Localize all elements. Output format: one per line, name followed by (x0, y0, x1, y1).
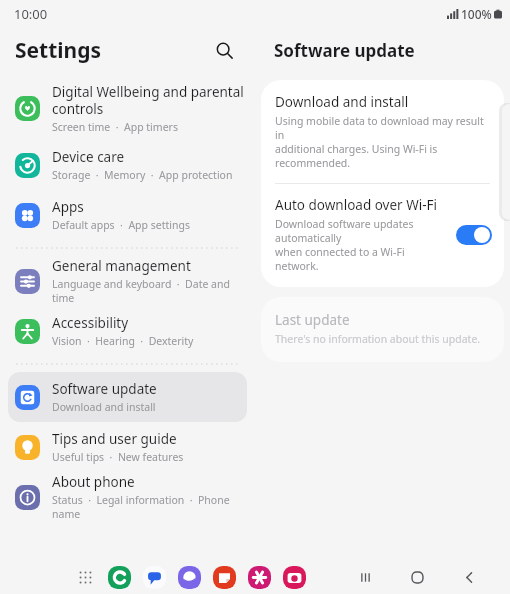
button[interactable]: Accessibility (0, 306, 255, 356)
button[interactable]: Camera (282, 565, 306, 589)
staticText: Using mobile data to download may result… (275, 114, 490, 170)
button[interactable]: Auto download over Wi-Fi (261, 184, 504, 287)
button[interactable]: Apps (74, 566, 96, 588)
staticText: Digital Wellbeing and parental controls (52, 83, 244, 118)
staticText: Vision · Hearing · Dexterity (52, 334, 194, 348)
staticText: Download software updates automatically … (275, 217, 448, 273)
staticText: 100% (461, 6, 492, 22)
staticText: Device care (52, 148, 125, 166)
staticText: Screen time · App timers (52, 120, 178, 134)
button[interactable]: Software update (8, 372, 247, 422)
staticText: Language and keyboard · Date and time (52, 277, 245, 305)
staticText: Auto download over Wi-Fi (275, 196, 438, 214)
staticText: Useful tips · New features (52, 450, 184, 464)
button[interactable]: Digital Wellbeing and parental controls (0, 76, 255, 140)
button[interactable]: Internet (177, 565, 201, 589)
button[interactable]: Search (209, 35, 239, 65)
button[interactable]: Download and install (261, 80, 504, 183)
button[interactable]: Messages (142, 565, 166, 589)
button[interactable]: About phone (0, 472, 255, 522)
button[interactable]: General management (0, 256, 255, 306)
button[interactable]: Gallery (247, 565, 271, 589)
staticText: 10:00 (14, 5, 48, 23)
button[interactable]: Home (406, 566, 428, 588)
button[interactable]: Tips and user guide (0, 422, 255, 472)
staticText: Default apps · App settings (52, 218, 190, 232)
staticText: Last update (275, 311, 350, 329)
staticText: There's no information about this update… (275, 332, 481, 346)
staticText: Download and install (275, 93, 409, 111)
staticText: General management (52, 257, 191, 275)
button[interactable]: Phone (107, 565, 131, 589)
staticText: Apps (52, 198, 84, 216)
staticText: About phone (52, 473, 135, 491)
staticText: Download and install (52, 400, 156, 414)
staticText: Tips and user guide (52, 430, 177, 448)
staticText: Software update (52, 380, 157, 398)
button[interactable]: Auto download over Wi-Fi toggle (456, 225, 492, 245)
staticText: Storage · Memory · App protection (52, 168, 233, 182)
button[interactable]: Last update (261, 297, 504, 362)
button[interactable]: Back (458, 566, 480, 588)
staticText: Software update (274, 39, 415, 62)
staticText: Settings (15, 36, 102, 65)
button[interactable]: Notes (212, 565, 236, 589)
button[interactable]: Device care (0, 140, 255, 190)
staticText: Status · Legal information · Phone name (52, 493, 245, 521)
staticText: Accessibility (52, 314, 129, 332)
button[interactable]: Apps (0, 190, 255, 240)
button[interactable]: Recents (354, 566, 376, 588)
